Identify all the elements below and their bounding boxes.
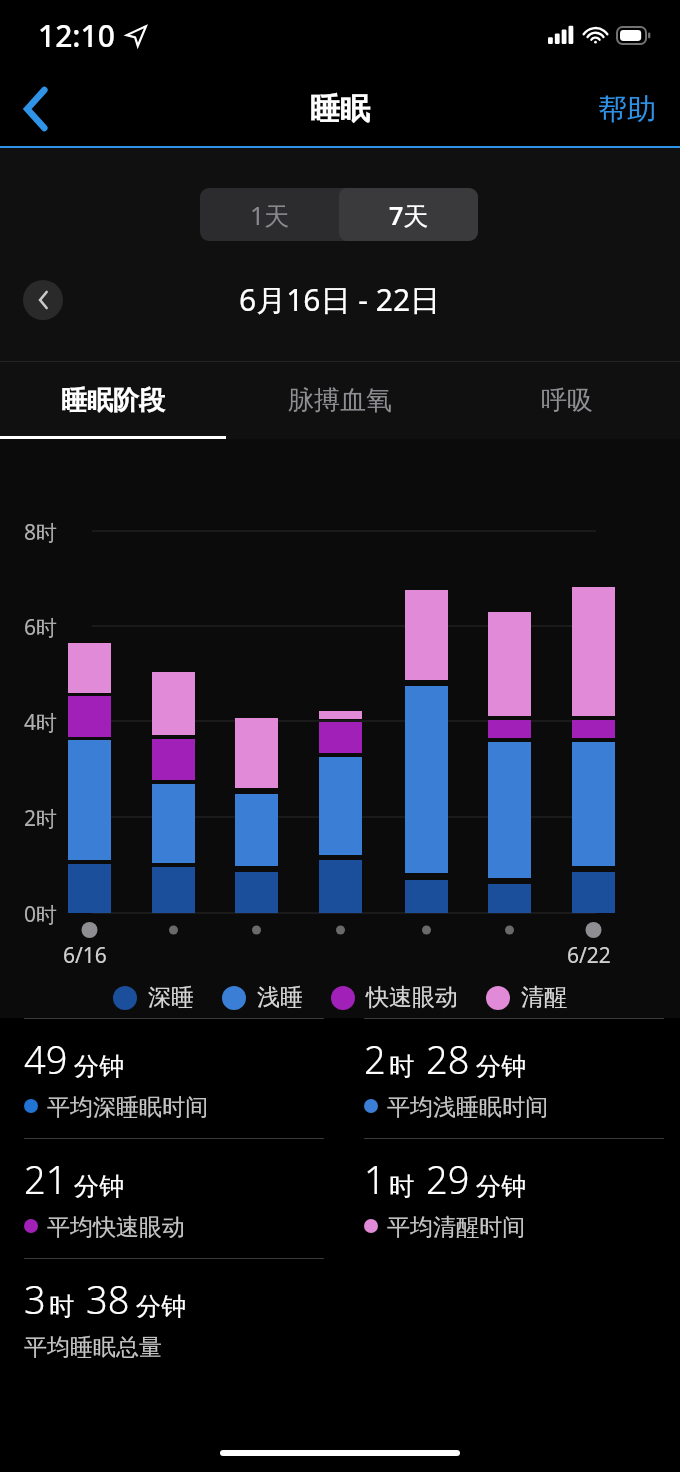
button[interactable]: 1: [364, 1138, 664, 1238]
staticText: 分钟: [136, 1291, 186, 1322]
staticText: 4时: [24, 708, 58, 737]
staticText: 睡眠: [310, 90, 370, 128]
staticText: 脉搏血氧: [288, 384, 392, 417]
staticText: 平均深睡眠时间: [47, 1093, 208, 1118]
button[interactable]: 21: [24, 1138, 324, 1238]
button[interactable]: 呼吸: [453, 362, 680, 439]
staticText: 浅睡: [257, 983, 303, 1012]
staticText: 深睡: [148, 983, 194, 1012]
staticText: 呼吸: [541, 384, 593, 417]
staticText: 6月16日 - 22日: [239, 279, 441, 320]
button[interactable]: 3: [24, 1258, 324, 1358]
staticText: 时: [389, 1051, 414, 1082]
staticText: 平均清醒时间: [387, 1213, 525, 1238]
staticText: 21: [24, 1153, 68, 1205]
button[interactable]: 49: [24, 1018, 324, 1118]
staticText: 2时: [24, 804, 58, 833]
staticText: 时: [389, 1171, 414, 1202]
staticText: 分钟: [476, 1171, 526, 1202]
staticText: 28: [426, 1033, 470, 1085]
staticText: 3: [24, 1273, 46, 1325]
button[interactable]: 2: [364, 1018, 664, 1118]
staticText: 平均浅睡眠时间: [387, 1093, 548, 1118]
staticText: 1: [364, 1153, 386, 1205]
staticText: 快速眼动: [366, 983, 458, 1012]
button[interactable]: 脉搏血氧: [226, 362, 453, 439]
staticText: 平均睡眠总量: [24, 1333, 162, 1358]
staticText: 分钟: [74, 1051, 124, 1082]
staticText: 分钟: [74, 1171, 124, 1202]
staticText: 时: [49, 1291, 74, 1322]
staticText: 睡眠阶段: [61, 384, 165, 417]
staticText: 6/16: [63, 941, 107, 970]
staticText: 分钟: [476, 1051, 526, 1082]
staticText: 7天: [389, 198, 429, 232]
staticText: 6/22: [567, 941, 611, 970]
staticText: 12:10: [38, 15, 115, 56]
button[interactable]: 帮助: [574, 70, 680, 148]
button[interactable]: Back: [0, 70, 72, 148]
staticText: 49: [24, 1033, 68, 1085]
staticText: 0时: [24, 900, 58, 929]
button[interactable]: 7天: [339, 188, 478, 241]
staticText: 1天: [250, 198, 290, 232]
staticText: 6时: [24, 613, 58, 642]
staticText: 2: [364, 1033, 386, 1085]
button[interactable]: Previous week: [23, 280, 63, 320]
staticText: 8时: [24, 518, 58, 547]
button[interactable]: 1天: [200, 188, 339, 241]
staticText: 38: [86, 1273, 130, 1325]
staticText: 帮助: [598, 91, 656, 128]
staticText: 平均快速眼动: [47, 1213, 185, 1238]
button[interactable]: 睡眠阶段: [0, 362, 226, 439]
staticText: 29: [426, 1153, 470, 1205]
staticText: 清醒: [521, 983, 567, 1012]
